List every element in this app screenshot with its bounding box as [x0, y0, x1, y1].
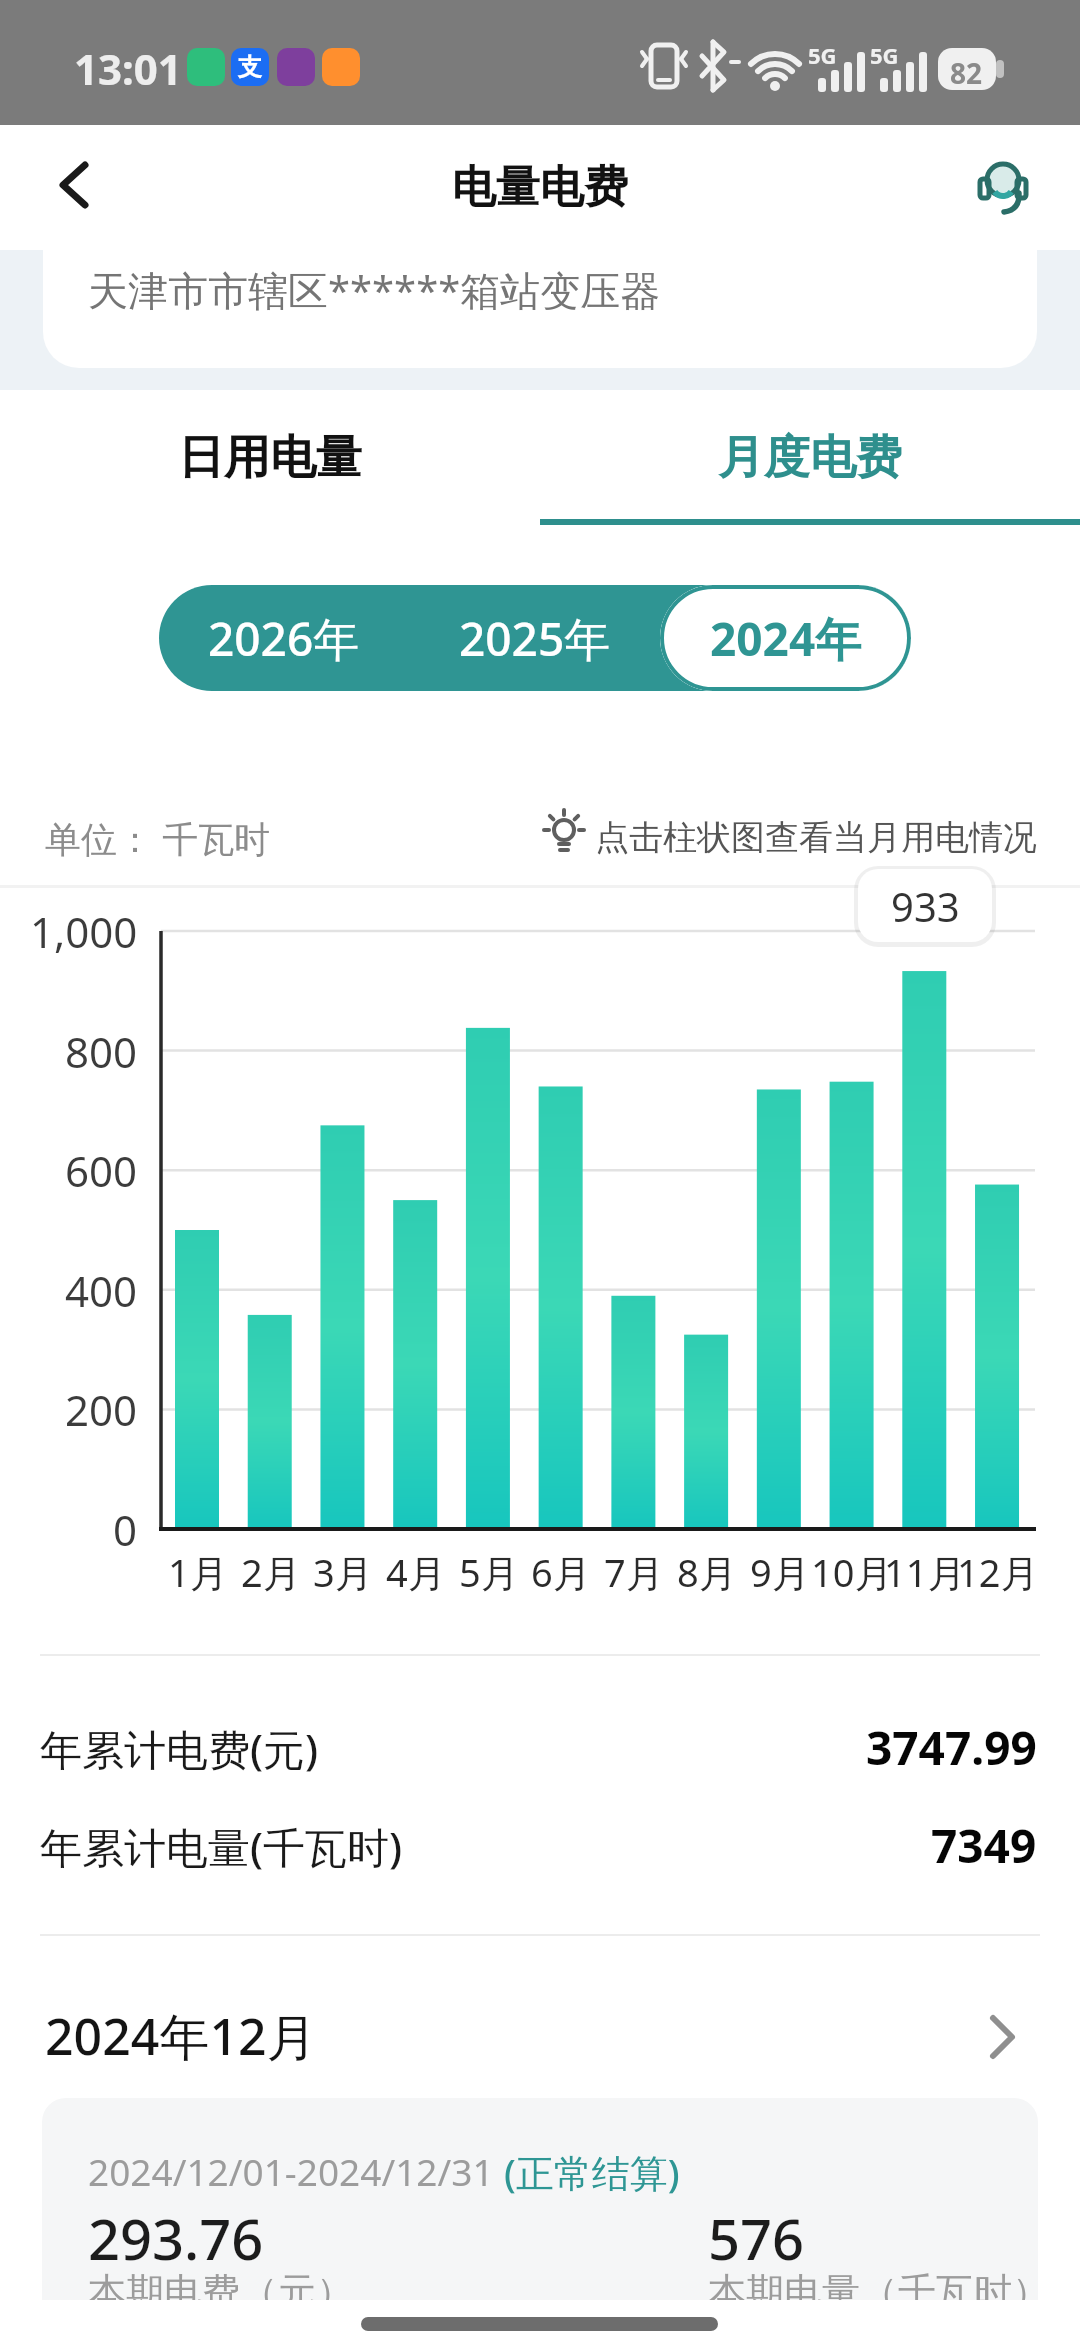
staticText: 7349	[931, 1814, 1037, 1876]
button[interactable]: 2024年	[660, 585, 911, 691]
staticText: 天津市市辖区******箱站变压器	[88, 262, 661, 317]
staticText: 2025年	[459, 607, 611, 670]
staticText: 800	[65, 1023, 138, 1079]
staticText: 400	[65, 1262, 138, 1318]
staticText: 4月	[386, 1546, 446, 1598]
staticText: 3月	[313, 1546, 373, 1598]
staticText: 本期电量（千瓦时）	[708, 2268, 1038, 2316]
staticText: 月度电费	[718, 429, 902, 487]
staticText: 12月	[957, 1546, 1039, 1598]
staticText: (正常结算)	[504, 2146, 680, 2198]
staticText: 933	[891, 879, 960, 933]
staticText: 5月	[459, 1546, 519, 1598]
staticText: 1月	[168, 1546, 228, 1598]
button[interactable]: 2024年12月	[40, 1996, 1040, 2076]
staticText: 5G	[808, 40, 837, 70]
staticText: 293.76	[88, 2200, 264, 2276]
staticText: 年累计电费(元)	[40, 1720, 319, 1777]
staticText: 576	[708, 2200, 805, 2276]
staticText: 5G	[870, 40, 899, 70]
button[interactable]: 2026年	[159, 585, 409, 691]
staticText: 8月	[677, 1546, 737, 1598]
staticText: 2024年	[710, 607, 862, 670]
staticText: 本期电费（元）	[88, 2268, 354, 2316]
button[interactable]	[966, 147, 1046, 227]
staticText: 3747.99	[866, 1716, 1037, 1778]
button[interactable]: 天津市市辖区******箱站变压器	[43, 250, 1037, 368]
staticText: 600	[65, 1142, 138, 1198]
staticText: 2024/12/01-2024/12/31	[88, 2146, 504, 2196]
staticText: 6月	[531, 1546, 591, 1598]
button[interactable]: 月度电费	[540, 390, 1080, 525]
staticText: 电量电费	[452, 160, 628, 215]
staticText: 200	[65, 1381, 138, 1437]
staticText: 10月	[811, 1546, 893, 1598]
staticText: 2024年12月	[45, 2002, 317, 2070]
staticText: 点击柱状图查看当月用电情况	[595, 816, 1037, 859]
staticText: 7月	[604, 1546, 664, 1598]
button[interactable]	[40, 150, 110, 220]
button[interactable]: 2024/12/01-2024/12/31	[42, 2098, 1038, 2352]
staticText: 11月	[884, 1546, 966, 1598]
staticText: 2月	[241, 1546, 301, 1598]
staticText: 82	[950, 54, 983, 92]
staticText: 2026年	[208, 607, 360, 670]
button[interactable]: 日用电量	[0, 390, 540, 525]
staticText: 年累计电量(千瓦时)	[40, 1818, 403, 1875]
staticText: 0	[113, 1501, 138, 1557]
staticText: 13:01	[74, 40, 182, 97]
staticText: 日用电量	[178, 429, 362, 487]
staticText: 单位： 千瓦时	[45, 814, 271, 863]
staticText: 9月	[750, 1546, 810, 1598]
button[interactable]: 2025年	[409, 585, 660, 691]
staticText: 1,000	[30, 903, 138, 959]
staticText: 支	[238, 52, 262, 82]
